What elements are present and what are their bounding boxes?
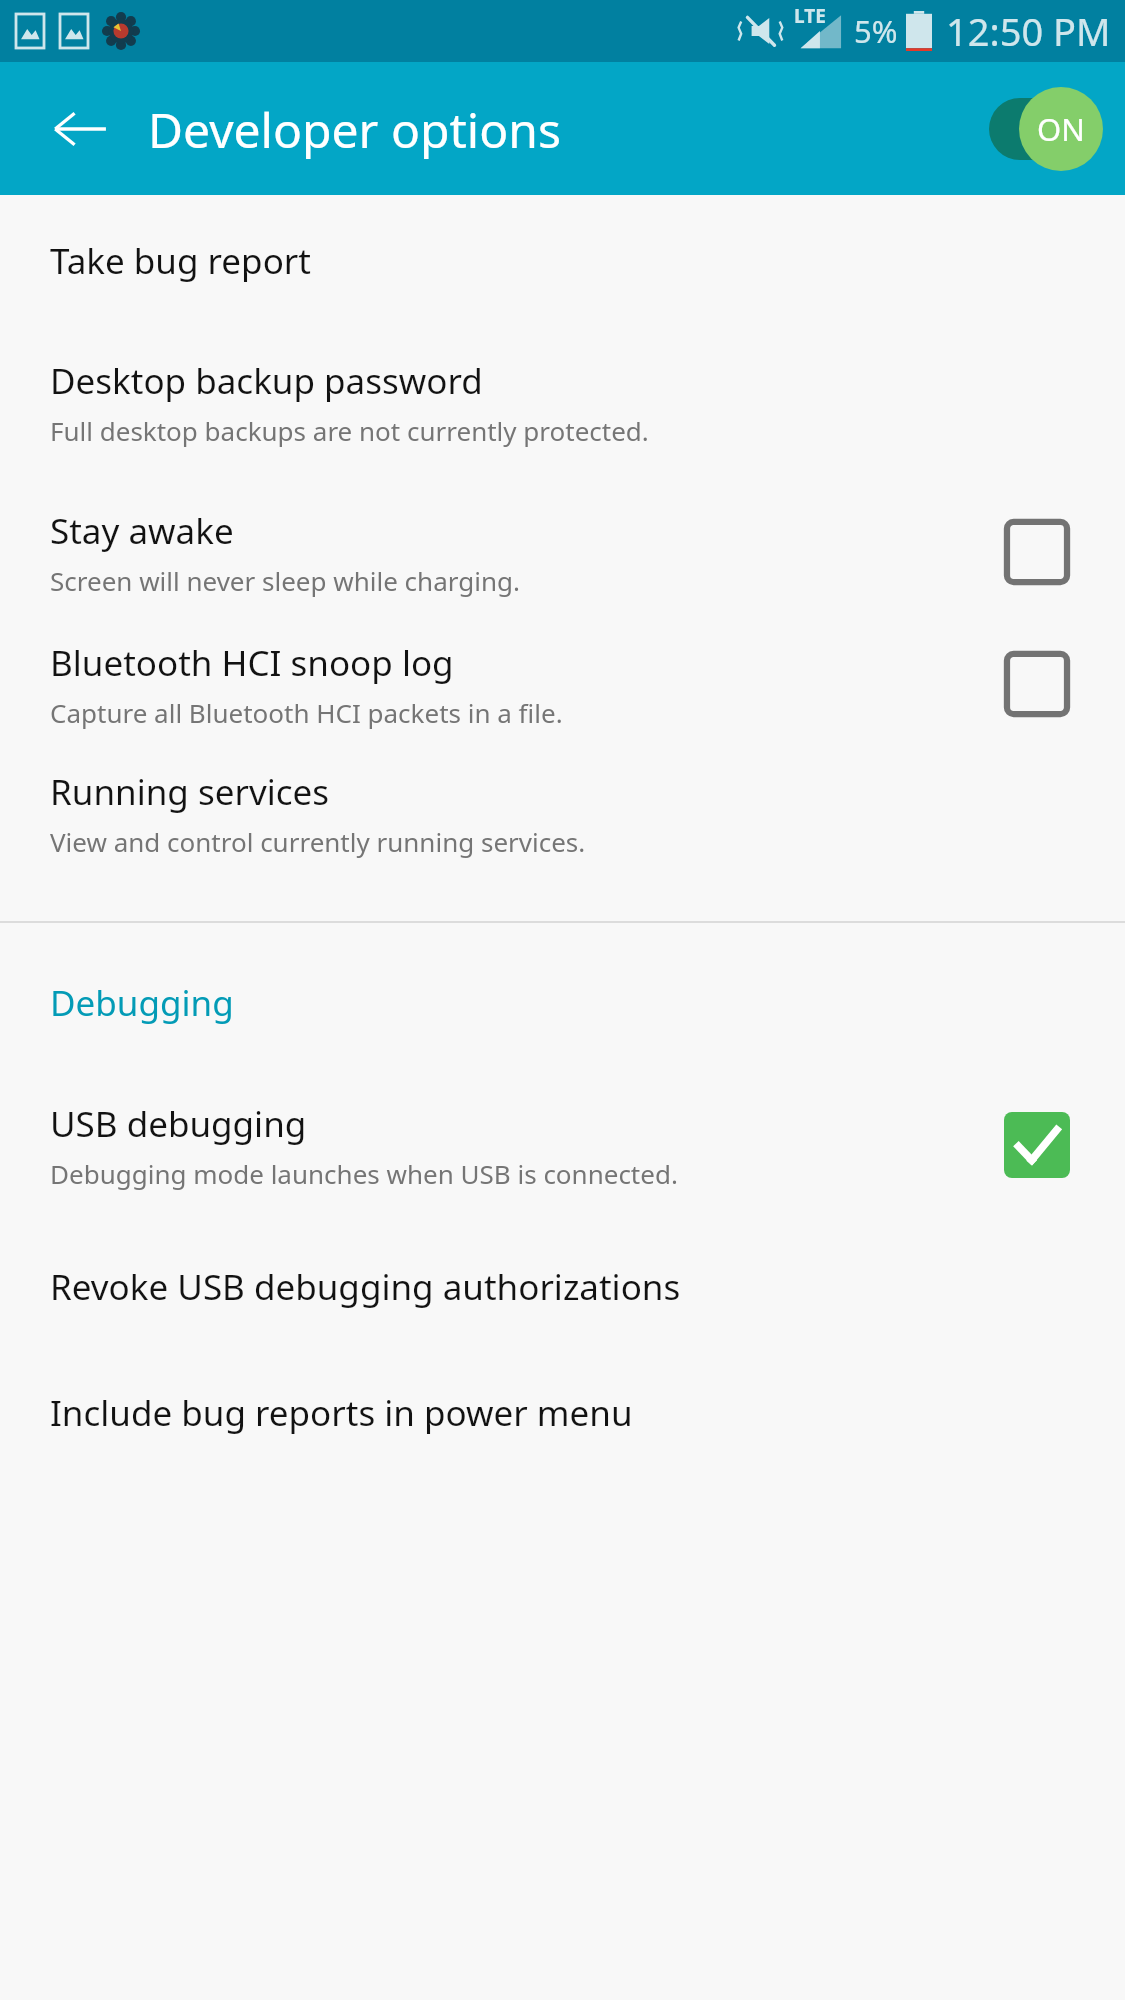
staticText: Debugging mode launches when USB is conn… [50,1156,678,1191]
button[interactable]: Bluetooth HCI snoop log [0,636,1125,732]
button[interactable]: ON [983,86,1103,172]
staticText: Take bug report [50,237,311,285]
other: Developer options on [983,86,1103,172]
staticText: View and control currently running servi… [50,824,586,859]
button[interactable]: Stay awake [0,504,1125,600]
staticText: 5% [854,10,898,52]
staticText: Screen will never sleep while charging. [50,563,520,598]
staticText: Stay awake [50,507,234,555]
staticText: Capture all Bluetooth HCI packets in a f… [50,695,563,730]
button[interactable]: Take bug report [0,237,1125,285]
staticText: Full desktop backups are not currently p… [50,413,649,448]
staticText: Running services [50,768,330,816]
button[interactable]: Include bug reports in power menu [0,1389,1125,1437]
button[interactable]: Revoke USB debugging authorizations [0,1263,1125,1311]
staticText: USB debugging [50,1100,307,1148]
button[interactable]: Bluetooth HCI snoop log checkbox [989,636,1085,732]
staticText: Desktop backup password [50,357,483,405]
button[interactable]: USB debugging checkbox [989,1097,1085,1193]
staticText: 12:50 PM [946,5,1111,57]
button[interactable]: Back [44,93,116,165]
button[interactable]: USB debugging [0,1097,1125,1193]
button[interactable]: Desktop backup password [0,357,1125,448]
staticText: Revoke USB debugging authorizations [50,1263,681,1311]
button[interactable]: Running services [0,768,1125,859]
staticText: Debugging [50,979,234,1027]
staticText: Include bug reports in power menu [50,1389,633,1437]
staticText: LTE [794,3,826,29]
staticText: ON [1037,108,1085,150]
staticText: Bluetooth HCI snoop log [50,639,454,687]
button[interactable]: Stay awake checkbox [989,504,1085,600]
staticText: Developer options [148,97,561,162]
